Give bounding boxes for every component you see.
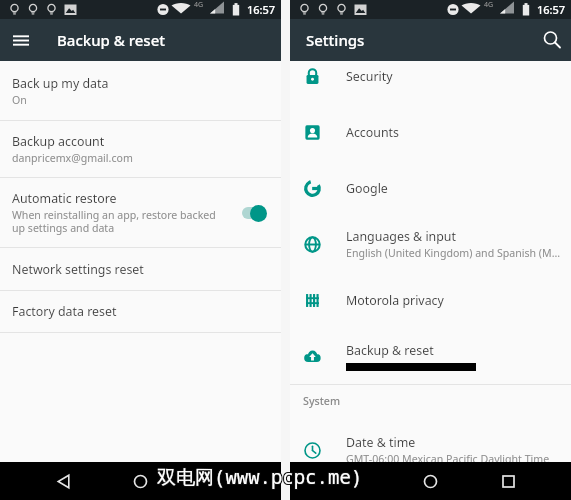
staticText: 16:57 — [537, 2, 566, 17]
button[interactable]: Recent apps — [200, 462, 236, 500]
button[interactable]: Home — [122, 462, 158, 500]
button[interactable]: Open navigation menu — [0, 19, 42, 61]
button[interactable]: Recent apps — [490, 462, 526, 500]
staticText: danpricemx@gmail.com — [12, 151, 133, 165]
staticText: Accounts — [346, 124, 400, 141]
button[interactable]: Back up my data — [0, 61, 281, 120]
button[interactable]: Accounts — [290, 104, 571, 160]
button[interactable]: Backup & reset — [290, 328, 571, 384]
staticText: Back up my data — [12, 75, 109, 92]
staticText: 双电网(www.pcpc.me) — [157, 465, 363, 491]
button[interactable]: Motorola privacy — [290, 272, 571, 328]
button[interactable]: Languages & input — [290, 216, 571, 272]
staticText: Factory data reset — [12, 303, 117, 320]
staticText: Security — [346, 68, 393, 85]
button[interactable]: Security — [290, 48, 571, 104]
staticText: Languages & input — [346, 228, 456, 245]
staticText: System — [303, 394, 341, 409]
button[interactable]: Backup account — [0, 121, 281, 177]
staticText: 双电网(www.pcpc.me) — [158, 463, 364, 489]
button[interactable]: Search — [533, 19, 571, 61]
button[interactable]: Home — [412, 462, 448, 500]
staticText: 双电网(www.pcpc.me) — [157, 464, 363, 490]
button[interactable]: Date & time — [290, 422, 571, 478]
staticText: 双电网(www.pcpc.me) — [156, 463, 362, 489]
staticText: Settings — [306, 30, 365, 50]
staticText: 双电网(www.pcpc.me) — [158, 464, 364, 490]
staticText: Automatic restore — [12, 190, 117, 207]
staticText: 4G — [194, 0, 204, 10]
button[interactable]: Factory data reset — [0, 291, 281, 332]
staticText: 双电网(www.pcpc.me) — [157, 463, 363, 489]
staticText: Network settings reset — [12, 261, 144, 278]
staticText: 4G — [484, 0, 494, 10]
staticText: Backup & reset — [57, 30, 166, 50]
staticText: Date & time — [346, 434, 416, 451]
staticText: Backup & reset — [346, 342, 434, 359]
button[interactable]: Google — [290, 160, 571, 216]
staticText: 16:57 — [247, 2, 276, 17]
button[interactable]: Back — [45, 462, 81, 500]
staticText: Motorola privacy — [346, 292, 444, 309]
staticText: English (United Kingdom) and Spanish (M… — [346, 246, 561, 260]
button[interactable]: Back — [335, 462, 371, 500]
button[interactable]: Network settings reset — [0, 248, 281, 290]
staticText: Google — [346, 180, 388, 197]
staticText: On — [12, 93, 27, 107]
staticText: GMT-06:00 Mexican Pacific Daylight Time — [346, 452, 550, 466]
staticText: Backup account — [12, 133, 105, 150]
staticText: 双电网(www.pcpc.me) — [156, 464, 362, 490]
staticText: 双电网(www.pcpc.me) — [156, 465, 362, 491]
staticText: 双电网(www.pcpc.me) — [158, 465, 364, 491]
staticText: When reinstalling an app, restore backed… — [12, 208, 216, 235]
button[interactable]: Automatic restore — [0, 178, 281, 247]
